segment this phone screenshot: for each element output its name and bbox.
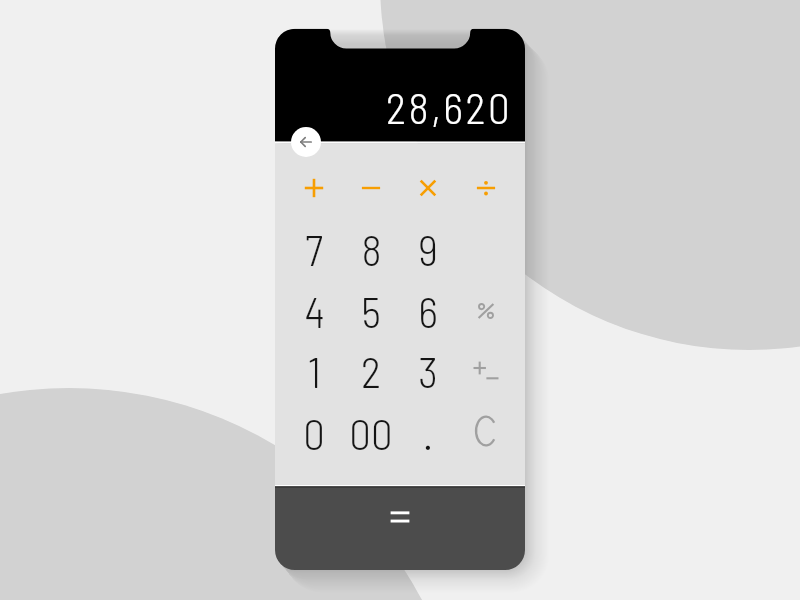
button[interactable]: .: [401, 404, 455, 462]
staticText: 1: [308, 345, 321, 397]
button[interactable]: 6: [401, 282, 455, 340]
button[interactable]: 5: [344, 282, 398, 340]
staticText: 5: [361, 285, 381, 337]
button[interactable]: Back: [291, 127, 321, 157]
button[interactable]: Add: [291, 165, 337, 211]
staticText: 6: [418, 285, 438, 337]
staticText: 9: [418, 223, 438, 275]
button[interactable]: 7: [287, 220, 341, 278]
button[interactable]: 3: [401, 342, 455, 400]
staticText: 00: [349, 407, 393, 459]
button[interactable]: 0: [287, 404, 341, 462]
staticText: 4: [304, 285, 325, 337]
button[interactable]: Divide: [463, 165, 509, 211]
button[interactable]: 00: [344, 404, 398, 462]
button[interactable]: 9: [401, 220, 455, 278]
button[interactable]: 8: [344, 220, 398, 278]
button[interactable]: Clear: [460, 405, 512, 457]
button[interactable]: Multiply: [405, 165, 451, 211]
staticText: 2: [361, 345, 381, 397]
button[interactable]: 4: [287, 282, 341, 340]
staticText: 8: [361, 223, 382, 275]
button[interactable]: 2: [344, 342, 398, 400]
staticText: 3: [418, 345, 438, 397]
staticText: 28,620: [386, 81, 513, 133]
staticText: 0: [303, 407, 325, 459]
button[interactable]: 1: [287, 342, 341, 400]
button[interactable]: Subtract: [348, 165, 394, 211]
button[interactable]: Percent: [460, 285, 512, 337]
button[interactable]: Equals: [275, 486, 525, 570]
staticText: .: [423, 407, 433, 459]
button[interactable]: Toggle sign: [460, 345, 512, 397]
staticText: 7: [305, 223, 323, 275]
